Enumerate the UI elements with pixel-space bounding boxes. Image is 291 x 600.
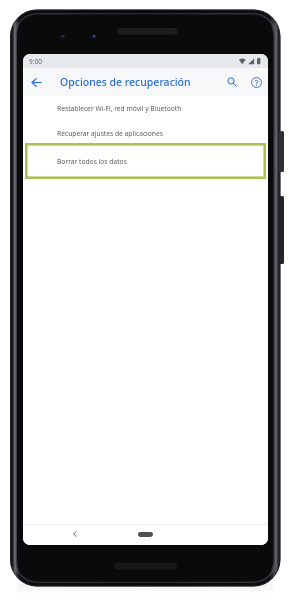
button[interactable]: Recuperar ajustes de aplicaciones	[23, 121, 268, 146]
staticText: Opciones de recuperación	[60, 75, 220, 89]
staticText: Borrar todos los datos	[57, 157, 127, 166]
staticText: 9:00	[29, 57, 42, 66]
button[interactable]: Inicio	[138, 532, 153, 537]
button[interactable]: Atrás	[23, 68, 50, 96]
button[interactable]: Restablecer Wi-Fi, red móvil y Bluetooth	[23, 96, 268, 121]
button[interactable]: Buscar	[220, 68, 244, 96]
staticText: Restablecer Wi-Fi, red móvil y Bluetooth	[57, 104, 182, 113]
button[interactable]: Borrar todos los datos	[25, 143, 266, 179]
button[interactable]: Ayuda	[244, 68, 268, 96]
staticText: Recuperar ajustes de aplicaciones	[57, 129, 163, 138]
button[interactable]: Atrás	[68, 527, 82, 541]
